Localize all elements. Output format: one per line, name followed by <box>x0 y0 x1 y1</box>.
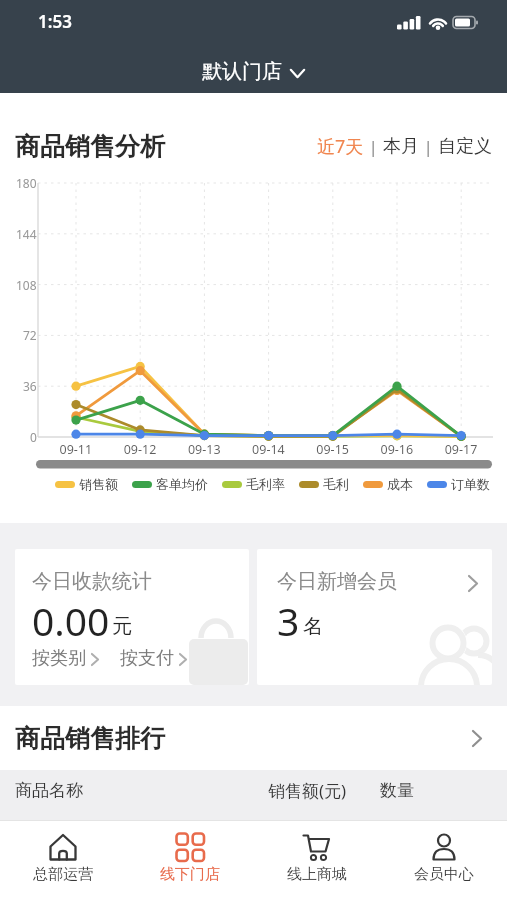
staticText: 3 <box>277 594 300 647</box>
staticText: 元 <box>112 614 132 639</box>
staticText: 线下门店 <box>160 865 220 884</box>
staticText: 毛利率 <box>246 476 285 492</box>
button[interactable]: 近7天 <box>317 134 364 159</box>
staticText: 成本 <box>387 476 413 492</box>
button[interactable]: 线上商城 <box>253 821 380 900</box>
button[interactable]: 今日收款统计 <box>15 549 249 685</box>
staticText: 今日收款统计 <box>32 569 152 594</box>
button[interactable]: 会员中心 <box>380 821 507 900</box>
button[interactable]: 总部运营 <box>0 821 126 900</box>
staticText: 销售额(元) <box>268 779 347 802</box>
staticText: 1:53 <box>38 10 72 33</box>
button[interactable]: 按支付 <box>120 647 174 670</box>
staticText: 销售额 <box>79 476 118 492</box>
staticText: | <box>364 135 383 158</box>
button[interactable]: 商品销售排行 <box>0 706 507 770</box>
button[interactable]: 自定义 <box>438 135 492 158</box>
staticText: | <box>419 135 438 158</box>
staticText: 商品销售分析 <box>15 131 165 162</box>
staticText: 订单数 <box>451 476 490 492</box>
button[interactable]: 按类别 <box>32 647 86 670</box>
staticText: 客单均价 <box>156 476 208 492</box>
staticText: 商品销售排行 <box>15 723 165 754</box>
button[interactable]: 默认门店 <box>0 49 507 93</box>
staticText: 总部运营 <box>33 865 93 884</box>
button[interactable]: 今日新增会员 <box>257 549 492 685</box>
staticText: 数量 <box>380 780 414 801</box>
staticText: 默认门店 <box>202 59 282 84</box>
staticText: 毛利 <box>323 476 349 492</box>
staticText: 会员中心 <box>414 865 474 884</box>
button[interactable]: 线下门店 <box>126 821 253 900</box>
staticText: 0.00 <box>32 594 110 647</box>
staticText: 商品名称 <box>15 780 83 801</box>
staticText: 线上商城 <box>287 865 347 884</box>
button[interactable]: 本月 <box>383 135 419 158</box>
staticText: 今日新增会员 <box>277 569 397 594</box>
staticText: 名 <box>303 614 323 639</box>
